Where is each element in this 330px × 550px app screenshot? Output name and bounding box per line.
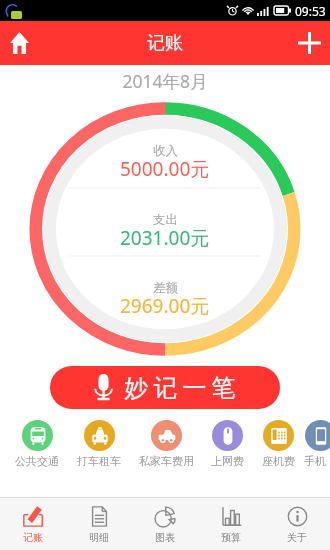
staticText: 记账 xyxy=(23,531,43,544)
staticText: 私家车费用 xyxy=(139,454,194,468)
staticText: 2969.00元 xyxy=(120,293,210,319)
button[interactable]: 妙记一笔 xyxy=(50,366,280,409)
button[interactable]: 打车租车 xyxy=(68,419,130,468)
staticText: 妙记一笔 xyxy=(122,373,238,403)
staticText: 2014年8月 xyxy=(0,69,330,93)
button[interactable]: 座机费 xyxy=(253,419,304,468)
button[interactable]: Add xyxy=(288,21,330,65)
button[interactable]: 预算 xyxy=(198,498,264,550)
button[interactable]: 公共交通 xyxy=(6,419,68,468)
staticText: 收入 xyxy=(153,143,178,159)
button[interactable]: 明细 xyxy=(66,498,132,550)
staticText: 5000.00元 xyxy=(120,156,210,182)
staticText: 预算 xyxy=(221,531,241,544)
button[interactable]: 图表 xyxy=(132,498,198,550)
button[interactable]: 关于 xyxy=(264,498,330,550)
staticText: 09:53 xyxy=(295,3,326,19)
staticText: 明细 xyxy=(89,531,109,544)
staticText: 支出 xyxy=(153,212,178,228)
button[interactable]: 记账 xyxy=(0,498,66,550)
staticText: 打车租车 xyxy=(77,454,121,468)
button[interactable]: Home xyxy=(0,21,38,65)
staticText: 手机费 xyxy=(304,454,330,468)
staticText: 差额 xyxy=(153,280,178,296)
staticText: 图表 xyxy=(155,531,175,544)
staticText: 关于 xyxy=(287,531,307,544)
staticText: 公共交通 xyxy=(15,454,59,468)
staticText: 座机费 xyxy=(262,454,295,468)
staticText: 2031.00元 xyxy=(120,225,210,251)
staticText: 记账 xyxy=(147,32,183,55)
staticText: 上网费 xyxy=(211,454,244,468)
button[interactable]: 手机费 xyxy=(304,419,330,468)
button[interactable]: 私家车费用 xyxy=(130,419,202,468)
button[interactable]: 上网费 xyxy=(202,419,253,468)
